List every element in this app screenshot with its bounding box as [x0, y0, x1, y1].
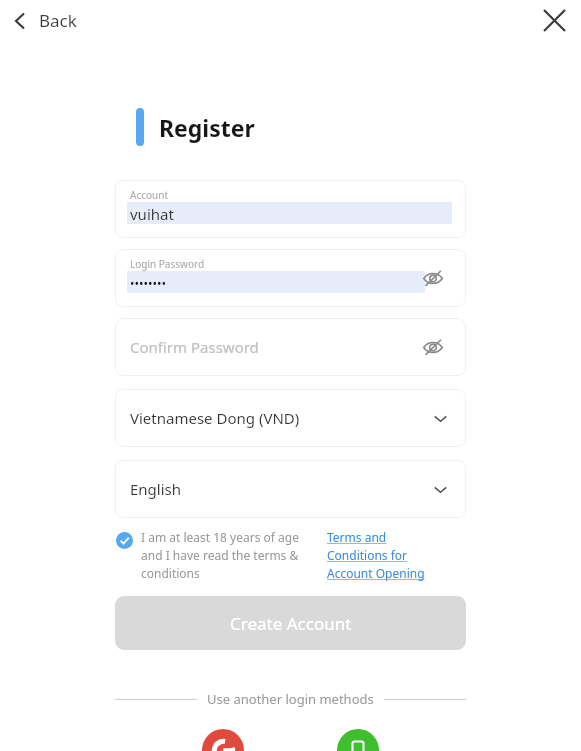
button[interactable]: Sign in with phone number [337, 729, 379, 751]
button[interactable]: English [115, 460, 466, 518]
button[interactable]: Create Account [115, 596, 466, 650]
button[interactable]: Confirm Password [115, 318, 466, 376]
staticText: vuihat [130, 204, 174, 224]
staticText: Confirm Password [130, 337, 259, 357]
button[interactable]: Terms and Conditions for Account Opening [327, 529, 447, 582]
staticText: English [130, 479, 182, 499]
button[interactable]: Login Password [115, 249, 466, 307]
staticText: Account [130, 188, 169, 202]
button[interactable]: Toggle password visibility [420, 265, 446, 291]
staticText: Vietnamese Dong (VND) [130, 408, 300, 428]
staticText: I am at least 18 years of age and I have… [141, 529, 321, 582]
staticText: Back [39, 9, 77, 32]
button[interactable]: Close [537, 3, 571, 37]
button[interactable]: Agree to terms and conditions [115, 531, 133, 549]
staticText: Login Password [130, 257, 205, 271]
button[interactable]: Toggle password visibility [420, 334, 446, 360]
button[interactable]: Back [2, 4, 85, 37]
staticText: Create Account [230, 612, 352, 635]
button[interactable]: Vietnamese Dong (VND) [115, 389, 466, 447]
button[interactable]: Sign in with Google [202, 729, 244, 751]
staticText: •••••••• [130, 275, 167, 291]
staticText: Use another login methods [207, 690, 374, 708]
staticText: Register [159, 112, 255, 143]
button[interactable]: Account [115, 180, 466, 238]
